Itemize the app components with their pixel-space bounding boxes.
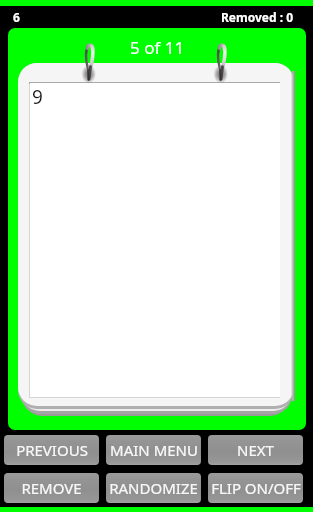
staticText: RANDOMIZE	[109, 478, 198, 498]
staticText: NEXT	[237, 440, 274, 460]
staticText: Removed : 0	[221, 9, 294, 25]
staticText: REMOVE	[21, 478, 82, 498]
staticText: PREVIOUS	[16, 440, 88, 460]
button[interactable]: REMOVE	[4, 473, 99, 503]
staticText: 5 of 11	[130, 36, 185, 59]
staticText: MAIN MENU	[110, 440, 198, 460]
button[interactable]: NEXT	[208, 435, 303, 465]
staticText: 6	[13, 9, 20, 25]
button[interactable]: PREVIOUS	[4, 435, 99, 465]
staticText: FLIP ON/OFF	[211, 478, 301, 498]
button[interactable]: MAIN MENU	[106, 435, 201, 465]
button[interactable]: RANDOMIZE	[106, 473, 201, 503]
button[interactable]: Flash card, tap to flip	[30, 83, 280, 397]
button[interactable]: FLIP ON/OFF	[208, 473, 303, 503]
staticText: 9	[32, 84, 43, 110]
